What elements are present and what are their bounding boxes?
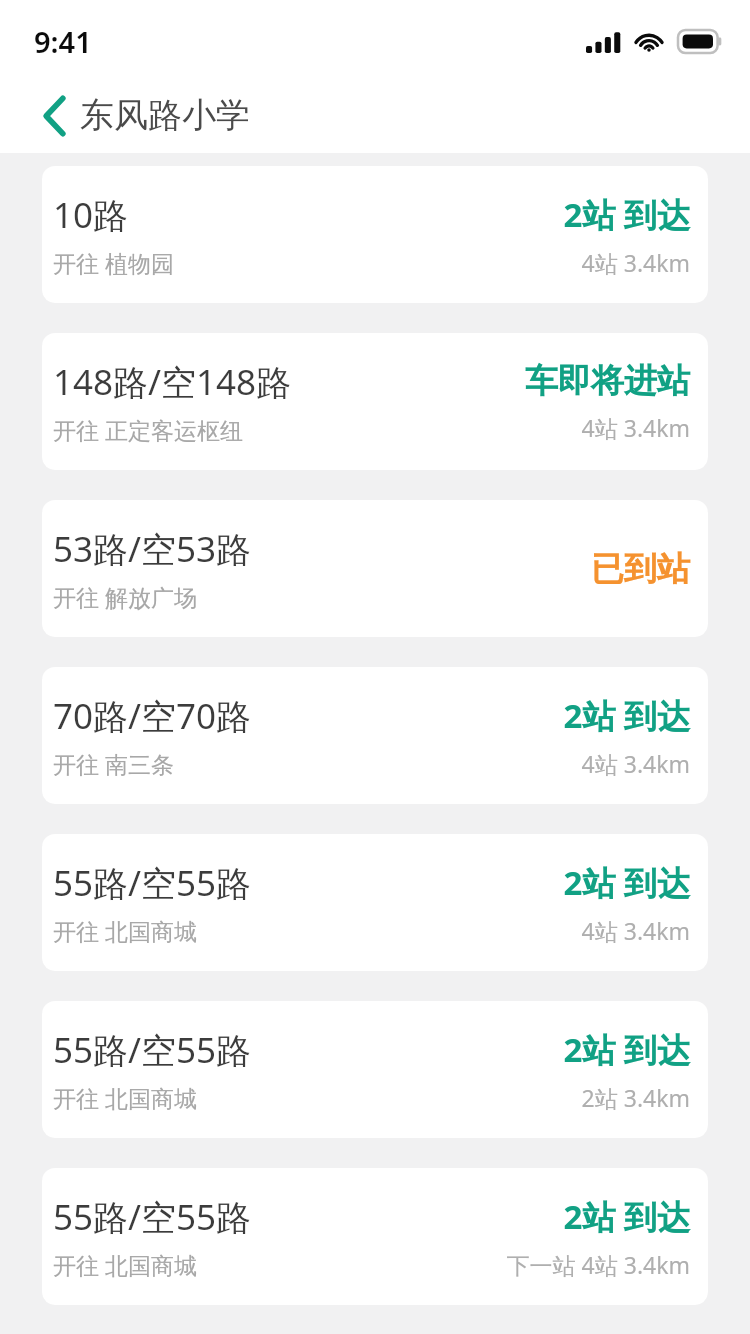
staticText: 开往 南三条 bbox=[53, 748, 174, 779]
button[interactable]: Back bbox=[0, 78, 750, 153]
staticText: 9:41 bbox=[34, 22, 92, 61]
button[interactable]: 10路 bbox=[42, 166, 708, 303]
staticText: 开往 植物园 bbox=[53, 247, 174, 278]
button[interactable]: 148路/空148路 bbox=[42, 333, 708, 470]
staticText: 70路/空70路 bbox=[53, 692, 252, 740]
staticText: 2站 到达 bbox=[563, 192, 690, 237]
staticText: 2站 到达 bbox=[563, 693, 690, 738]
staticText: 2站 到达 bbox=[563, 1027, 690, 1072]
staticText: 10路 bbox=[53, 191, 129, 239]
button[interactable]: 53路/空53路 bbox=[42, 500, 708, 637]
staticText: 下一站 4站 3.4km bbox=[506, 1249, 690, 1280]
staticText: 55路/空55路 bbox=[53, 1193, 252, 1241]
other: Back bbox=[40, 94, 70, 138]
staticText: 2站 到达 bbox=[563, 1194, 690, 1239]
staticText: 4站 3.4km bbox=[581, 247, 690, 278]
button[interactable]: 55路/空55路 bbox=[42, 1168, 708, 1305]
staticText: 53路/空53路 bbox=[53, 525, 252, 573]
staticText: 开往 正定客运枢纽 bbox=[53, 414, 243, 445]
staticText: 开往 北国商城 bbox=[53, 1082, 197, 1113]
staticText: 4站 3.4km bbox=[581, 412, 690, 443]
staticText: 车即将进站 bbox=[525, 360, 690, 402]
staticText: 55路/空55路 bbox=[53, 859, 252, 907]
staticText: 开往 解放广场 bbox=[53, 581, 197, 612]
staticText: 55路/空55路 bbox=[53, 1026, 252, 1074]
button[interactable]: 70路/空70路 bbox=[42, 667, 708, 804]
staticText: 开往 北国商城 bbox=[53, 915, 197, 946]
staticText: 开往 北国商城 bbox=[53, 1249, 197, 1280]
button[interactable]: 55路/空55路 bbox=[42, 1001, 708, 1138]
staticText: 东风路小学 bbox=[80, 94, 250, 137]
staticText: 已到站 bbox=[591, 548, 690, 590]
staticText: 2站 3.4km bbox=[581, 1082, 690, 1113]
staticText: 148路/空148路 bbox=[53, 358, 292, 406]
button[interactable]: 55路/空55路 bbox=[42, 834, 708, 971]
staticText: 4站 3.4km bbox=[581, 915, 690, 946]
staticText: 4站 3.4km bbox=[581, 748, 690, 779]
staticText: 2站 到达 bbox=[563, 860, 690, 905]
